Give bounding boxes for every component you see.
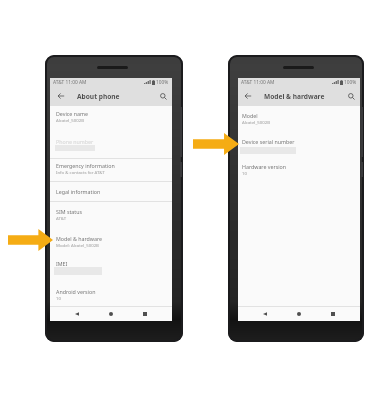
staticText: Phone number xyxy=(56,138,94,145)
button[interactable]: Search xyxy=(156,86,170,106)
staticText: Android version xyxy=(56,288,96,295)
button[interactable]: Home xyxy=(104,307,118,321)
button[interactable]: Android version xyxy=(50,282,172,300)
staticText: IMEI xyxy=(56,260,68,267)
button[interactable]: SIM status xyxy=(50,202,172,220)
button[interactable]: Back xyxy=(54,86,68,106)
staticText: Model & hardware xyxy=(264,92,325,101)
staticText: Legal information xyxy=(56,188,101,195)
button[interactable]: IMEI xyxy=(50,256,172,270)
staticText: Device name xyxy=(56,110,88,117)
staticText: Device serial number xyxy=(242,138,295,145)
button[interactable]: Back xyxy=(258,307,272,321)
staticText: AT&T 11:00 AM xyxy=(53,79,87,86)
staticText: Alcatel_5002B xyxy=(242,119,270,125)
button[interactable]: Recents xyxy=(326,307,340,321)
staticText: SIM status xyxy=(56,208,83,215)
staticText: 10 xyxy=(56,295,61,301)
button[interactable]: Recents xyxy=(138,307,152,321)
staticText: 10 xyxy=(242,170,247,176)
staticText: About phone xyxy=(77,92,120,101)
staticText: Model & hardware xyxy=(56,235,103,242)
staticText: 100% xyxy=(344,79,357,86)
button[interactable]: Emergency information xyxy=(50,156,172,174)
button[interactable]: Home xyxy=(292,307,306,321)
staticText: Model: Alcatel_5002B xyxy=(56,242,99,248)
button[interactable]: Model xyxy=(238,106,360,124)
button[interactable]: Search xyxy=(344,86,358,106)
staticText: Alcatel_5002B xyxy=(56,117,84,123)
button[interactable]: Back xyxy=(70,307,84,321)
staticText: Info & contacts for AT&T xyxy=(56,169,105,175)
button[interactable]: Phone number xyxy=(50,134,172,148)
button[interactable]: Device serial number xyxy=(238,134,360,148)
button[interactable]: Model & hardware xyxy=(50,229,172,247)
button[interactable]: Device name xyxy=(50,104,172,122)
staticText: AT&T xyxy=(56,215,67,221)
button[interactable]: Back xyxy=(241,86,255,106)
staticText: 100% xyxy=(156,79,169,86)
button[interactable]: Legal information xyxy=(50,184,172,198)
staticText: Model xyxy=(242,112,258,119)
staticText: Hardware version xyxy=(242,163,287,170)
staticText: AT&T 11:00 AM xyxy=(241,79,275,86)
button[interactable]: Hardware version xyxy=(238,157,360,175)
staticText: Emergency information xyxy=(56,162,115,169)
